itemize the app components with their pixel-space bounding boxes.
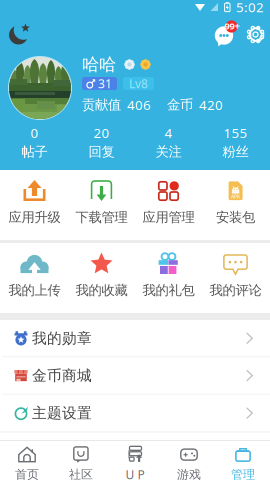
staticText: 主题设置 — [32, 404, 92, 422]
staticText: 下载管理 — [75, 209, 127, 225]
staticText: 哈哈 — [82, 54, 116, 75]
button[interactable]: 我的勋章 — [0, 320, 270, 357]
staticText: 社区 — [69, 467, 93, 480]
staticText: 安装包 — [216, 209, 255, 225]
staticText: 金币 — [167, 97, 193, 113]
staticText: U P — [125, 466, 144, 480]
staticText: 406 — [127, 96, 151, 114]
staticText: 贡献值 — [82, 97, 121, 113]
button[interactable]: Night mode — [0, 21, 33, 47]
staticText: 回复 — [88, 144, 114, 160]
staticText: 31 — [98, 75, 112, 91]
staticText: 99+ — [225, 20, 240, 32]
staticText: 我的礼包 — [142, 282, 194, 298]
staticText: 4 — [164, 124, 172, 142]
button[interactable]: 首页 — [0, 441, 54, 480]
button[interactable]: Messages — [212, 20, 238, 48]
staticText: 0 — [30, 124, 38, 142]
staticText: 关注 — [155, 144, 181, 160]
staticText: 应用管理 — [142, 209, 194, 225]
staticText: 游戏 — [177, 467, 201, 480]
button[interactable]: 主题设置 — [0, 395, 270, 432]
button[interactable]: 游戏 — [162, 441, 216, 480]
button[interactable]: 金币商城 — [0, 357, 270, 395]
staticText: 首页 — [15, 467, 39, 480]
staticText: Lv8 — [129, 75, 148, 91]
staticText: 应用升级 — [8, 209, 60, 225]
button[interactable]: 0 — [1, 126, 68, 158]
button[interactable]: 我的评论 — [202, 243, 269, 313]
button[interactable]: 我的上传 — [1, 243, 68, 313]
staticText: APK — [231, 193, 240, 200]
staticText: 管理 — [231, 467, 255, 480]
button[interactable]: 下载管理 — [68, 170, 135, 240]
button[interactable]: 社区 — [54, 441, 108, 480]
button[interactable]: APK — [202, 170, 269, 240]
staticText: 我的收藏 — [75, 282, 127, 298]
button[interactable]: 应用升级 — [1, 170, 68, 240]
staticText: 我的勋章 — [32, 329, 92, 347]
button[interactable]: 应用管理 — [135, 170, 202, 240]
button[interactable]: Settings — [246, 25, 270, 44]
staticText: 我的上传 — [8, 282, 60, 298]
button[interactable]: 管理 — [216, 441, 270, 480]
button[interactable]: 我的收藏 — [68, 243, 135, 313]
staticText: 帖子 — [21, 144, 47, 160]
button[interactable]: 20 — [68, 126, 135, 158]
staticText: 155 — [223, 124, 247, 142]
staticText: 我的评论 — [209, 282, 261, 298]
staticText: 420 — [199, 96, 223, 114]
button[interactable]: 我的礼包 — [135, 243, 202, 313]
button[interactable]: U P — [108, 441, 162, 480]
button[interactable]: 155 — [202, 126, 269, 158]
staticText: 20 — [93, 124, 109, 142]
staticText: 粉丝 — [222, 144, 248, 160]
staticText: 5:02 — [236, 0, 264, 16]
button[interactable]: 4 — [135, 126, 202, 158]
staticText: 金币商城 — [32, 366, 92, 384]
